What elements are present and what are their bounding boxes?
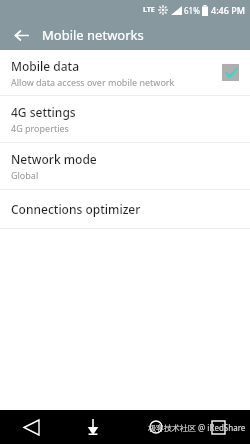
staticText: 极客技术社区 @ iRedShare <box>148 422 246 433</box>
staticText: LTE <box>143 5 155 15</box>
staticText: Allow data access over mobile network <box>11 76 175 88</box>
button[interactable]: Back <box>0 410 62 444</box>
staticText: 4G settings <box>11 104 76 120</box>
staticText: 4:46 PM <box>211 4 245 16</box>
button[interactable]: Menu <box>187 410 250 444</box>
button[interactable]: Back <box>0 20 42 50</box>
button[interactable]: 4G settings <box>0 96 250 142</box>
staticText: Connections optimizer <box>11 201 141 217</box>
button[interactable]: Mobile data <box>0 50 250 95</box>
button[interactable]: Connections optimizer <box>0 190 250 228</box>
button[interactable]: Home <box>62 410 124 444</box>
staticText: Global <box>11 169 39 181</box>
staticText: Mobile data <box>11 58 80 74</box>
staticText: 4G properties <box>11 122 69 134</box>
staticText: Mobile networks <box>42 26 144 44</box>
staticText: 61% <box>184 5 200 16</box>
button[interactable]: Recents <box>124 410 187 444</box>
button[interactable]: Network mode <box>0 143 250 189</box>
staticText: Network mode <box>11 151 97 167</box>
